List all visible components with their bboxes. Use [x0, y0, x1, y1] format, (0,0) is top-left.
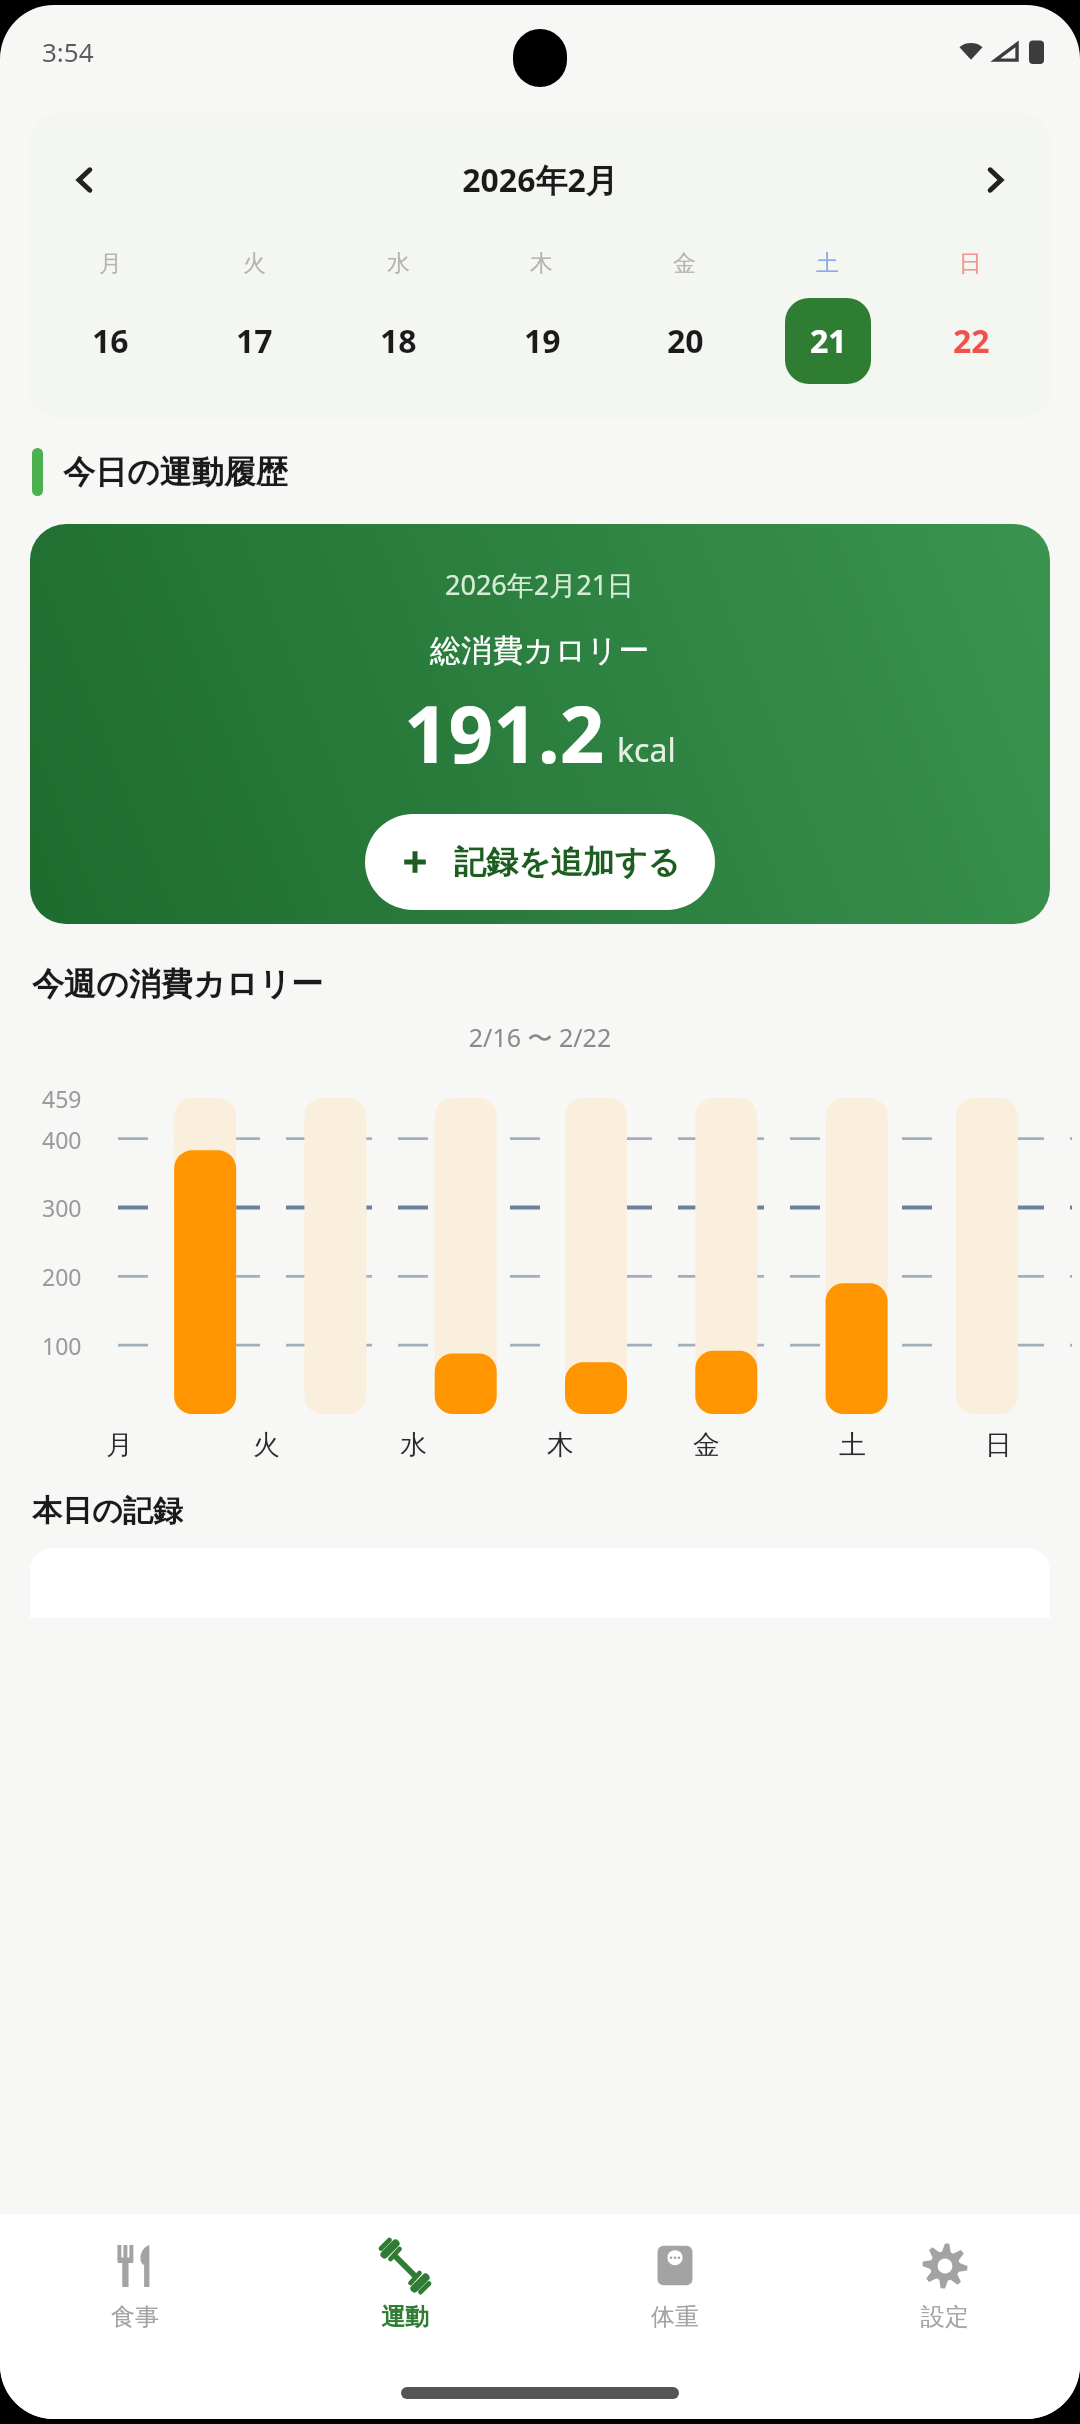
- button[interactable]: Next month: [964, 149, 1026, 211]
- button[interactable]: 16: [67, 298, 153, 384]
- button[interactable]: 運動: [270, 2234, 540, 2374]
- staticText: 21: [810, 319, 847, 363]
- staticText: 本日の記録: [32, 1492, 183, 1530]
- button[interactable]: 22: [928, 298, 1014, 384]
- staticText: 土: [839, 1428, 866, 1462]
- staticText: 火: [253, 1428, 280, 1462]
- staticText: 200: [42, 1261, 82, 1292]
- staticText: 土: [816, 249, 839, 278]
- staticText: 記録を追加する: [454, 842, 681, 882]
- staticText: 総消費カロリー: [430, 631, 650, 670]
- staticText: 300: [42, 1192, 82, 1223]
- staticText: 金: [673, 249, 696, 278]
- staticText: 月: [99, 249, 122, 278]
- button[interactable]: 2026年2月21日: [30, 524, 1050, 924]
- staticText: 17: [236, 319, 273, 363]
- staticText: 400: [42, 1124, 82, 1155]
- staticText: 運動: [381, 2302, 429, 2332]
- button[interactable]: Previous month: [54, 149, 116, 211]
- staticText: 100: [42, 1330, 82, 1361]
- staticText: 2026年2月: [116, 158, 964, 202]
- button[interactable]: 21: [785, 298, 871, 384]
- staticText: 日: [985, 1428, 1012, 1462]
- button[interactable]: 食事: [0, 2234, 270, 2374]
- staticText: 459: [42, 1083, 82, 1114]
- staticText: 22: [953, 319, 990, 363]
- staticText: 月: [106, 1428, 133, 1462]
- button[interactable]: 体重: [540, 2234, 810, 2374]
- staticText: 2026年2月21日: [445, 566, 635, 603]
- staticText: 19: [524, 319, 561, 363]
- staticText: 火: [243, 249, 266, 278]
- staticText: 191.2: [404, 680, 605, 786]
- staticText: 木: [530, 249, 553, 278]
- button[interactable]: 記録を追加する: [365, 814, 715, 910]
- button[interactable]: 17: [211, 298, 297, 384]
- staticText: kcal: [617, 728, 676, 772]
- button[interactable]: 18: [355, 298, 441, 384]
- button[interactable]: 20: [642, 298, 728, 384]
- staticText: 水: [400, 1428, 427, 1462]
- staticText: 体重: [651, 2302, 699, 2332]
- staticText: 3:54: [42, 34, 94, 69]
- staticText: 日: [959, 249, 982, 278]
- staticText: 金: [693, 1428, 720, 1462]
- staticText: 今週の消費カロリー: [32, 964, 323, 1004]
- button[interactable]: 設定: [810, 2234, 1080, 2374]
- staticText: 18: [380, 319, 417, 363]
- staticText: 今日の運動履歴: [63, 452, 288, 492]
- staticText: 水: [387, 249, 410, 278]
- button[interactable]: 19: [499, 298, 585, 384]
- staticText: 2/16 〜 2/22: [0, 1020, 1080, 1054]
- staticText: 20: [667, 319, 704, 363]
- staticText: 木: [547, 1428, 574, 1462]
- staticText: 設定: [921, 2302, 969, 2332]
- staticText: 16: [92, 319, 129, 363]
- button[interactable]: 今日の運動履歴: [32, 448, 1080, 496]
- staticText: 食事: [111, 2302, 159, 2332]
